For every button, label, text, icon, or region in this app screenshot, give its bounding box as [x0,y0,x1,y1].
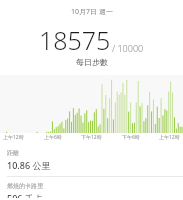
staticText: 距離 [7,149,19,157]
staticText: / 10000 [112,42,144,54]
staticText: 506 千卡 [7,192,43,198]
button[interactable] [0,75,183,133]
staticText: 下午6時 [122,134,140,141]
button[interactable]: 10月7日 週一 [0,7,183,17]
staticText: 10月7日 週一 [71,7,113,17]
staticText: 上午12時 [159,134,180,141]
staticText: 每日步數 [76,57,108,67]
button[interactable]: 距離 [0,147,183,173]
staticText: 下午12時 [81,134,102,141]
staticText: 18575 [39,23,111,57]
staticText: 上午6時 [44,134,62,141]
button[interactable]: 18575 [0,23,183,57]
button[interactable]: 燃燒的卡路里 [0,180,183,200]
staticText: 上午12時 [3,134,24,141]
staticText: 燃燒的卡路里 [7,182,43,190]
staticText: 10.86 公里 [7,159,51,171]
